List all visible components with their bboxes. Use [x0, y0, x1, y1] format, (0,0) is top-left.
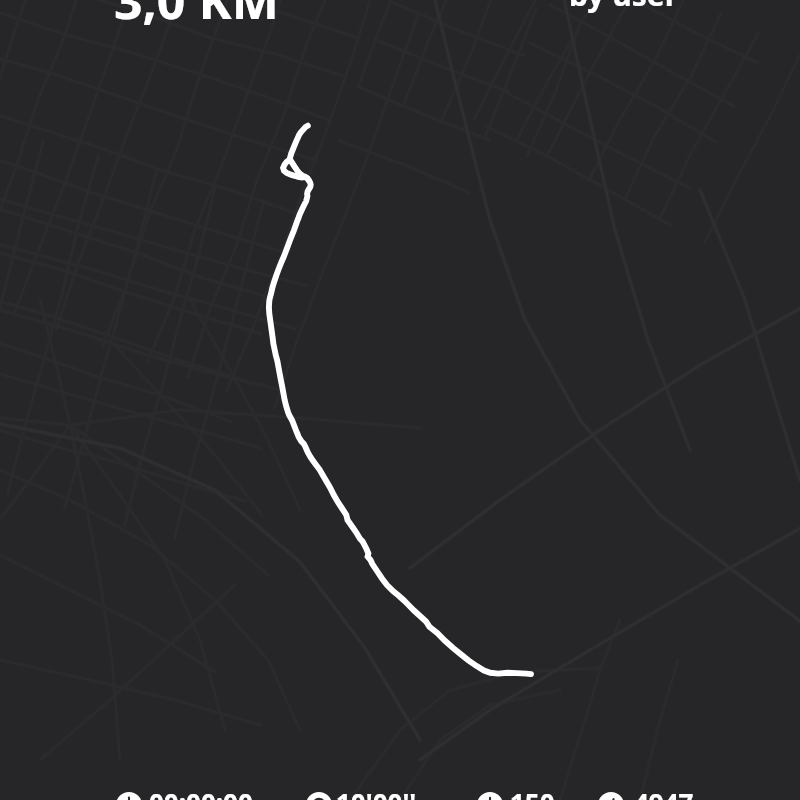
button[interactable]: Pace	[306, 792, 456, 800]
staticText: 4947	[634, 785, 694, 800]
staticText: 10'00''	[336, 785, 417, 800]
button[interactable]: 3,0 KM	[114, 0, 279, 34]
staticText: 00:00:00	[149, 785, 253, 800]
button[interactable]: Steps	[598, 792, 754, 800]
other: Pace	[306, 792, 332, 800]
other: Duration	[116, 792, 142, 800]
button[interactable]: by user	[569, 0, 679, 15]
button[interactable]: Calories	[477, 792, 630, 800]
button[interactable]: Duration	[116, 792, 269, 800]
other: Calories	[477, 792, 503, 800]
other: Steps	[598, 792, 624, 800]
staticText: 150	[510, 785, 555, 800]
